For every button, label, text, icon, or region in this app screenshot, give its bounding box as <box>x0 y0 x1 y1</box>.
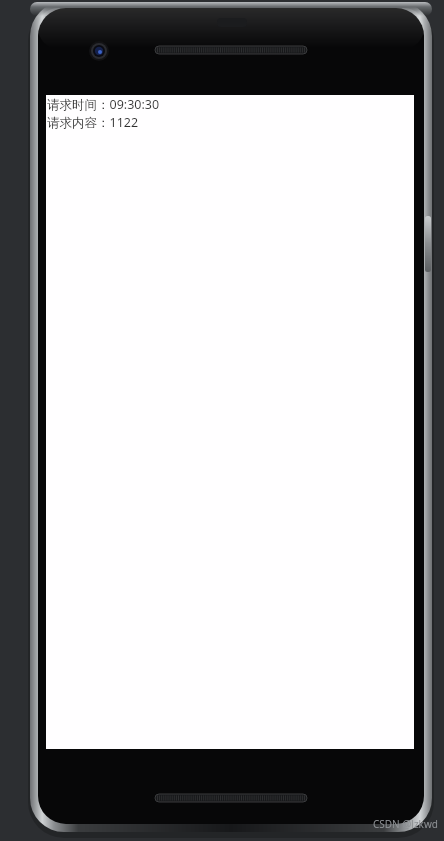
staticText: CSDN @lzkwd <box>373 817 438 831</box>
staticText: 请求时间：09:30:30 <box>47 96 160 113</box>
staticText: 请求内容：1122 <box>47 114 139 131</box>
other: CSDN watermark <box>373 817 438 831</box>
button[interactable]: 请求时间：09:30:30 <box>46 95 414 749</box>
